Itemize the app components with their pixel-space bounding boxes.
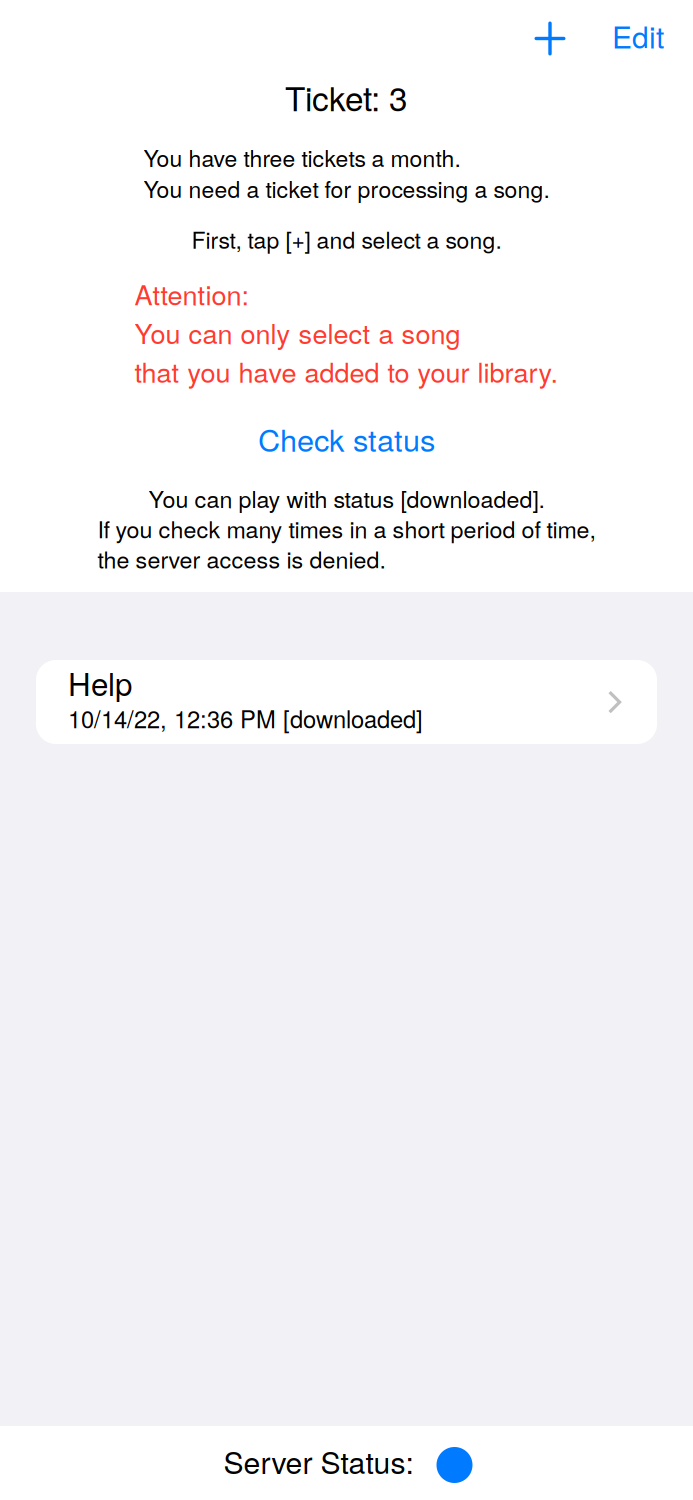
button[interactable]: Check status	[258, 390, 435, 460]
staticText: You need a ticket for processing a song.	[143, 172, 549, 204]
staticText: Edit	[612, 14, 664, 57]
staticText: Attention:	[134, 274, 249, 313]
button[interactable]: Edit	[591, 11, 685, 65]
staticText: 10/14/22, 12:36 PM [downloaded]	[68, 701, 423, 735]
staticText: Ticket: 3	[285, 73, 408, 121]
staticText: the server access is denied.	[97, 542, 385, 575]
staticText: You have three tickets a month.	[143, 141, 460, 173]
button[interactable]: Help	[36, 660, 657, 744]
staticText: Help	[68, 660, 132, 705]
staticText: Check status	[258, 416, 435, 460]
staticText: First, tap [+] and select a song.	[191, 222, 501, 255]
staticText: You can only select a song	[134, 313, 460, 352]
staticText: If you check many times in a short perio…	[97, 512, 595, 545]
staticText: that you have added to your library.	[134, 352, 558, 391]
staticText: Server Status:	[223, 1439, 413, 1483]
staticText: You can play with status [downloaded].	[148, 481, 544, 515]
button[interactable]: Add	[523, 11, 591, 65]
